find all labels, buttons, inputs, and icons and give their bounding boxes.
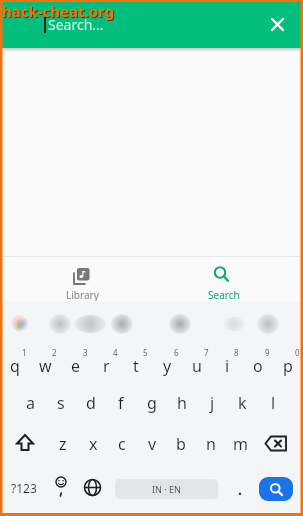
staticText: 2 [52,347,57,357]
button[interactable]: k [227,388,257,418]
staticText: t [133,355,139,377]
button[interactable]: n [197,429,225,459]
staticText: . [238,480,242,499]
button[interactable]: b [167,429,195,459]
staticText: d [86,392,96,414]
staticText: y [163,355,172,377]
staticText: x [89,433,98,455]
button[interactable] [270,17,286,33]
button[interactable] [259,477,293,501]
staticText: i [225,355,230,377]
staticText: ?123 [11,480,37,496]
button[interactable] [192,258,256,302]
staticText: h [177,392,187,414]
staticText: u [192,355,202,377]
staticText: m [233,433,248,455]
button[interactable] [54,476,70,500]
staticText: 1 [22,347,27,357]
button[interactable]: a [15,388,45,418]
button[interactable]: g [137,388,167,418]
button[interactable]: h [167,388,197,418]
button[interactable]: i [212,350,242,382]
staticText: hack-cheat.org [2,1,115,21]
button[interactable]: u [182,350,212,382]
staticText: l [271,392,276,414]
button[interactable]: c [108,429,136,459]
button[interactable]: r [91,350,121,382]
staticText: 4 [113,347,118,357]
staticText: g [147,392,157,414]
staticText: f [118,392,124,414]
staticText: Search... [48,15,104,34]
staticText: z [59,433,67,455]
staticText: j [210,392,215,414]
staticText: o [253,355,263,377]
button[interactable]: IN · EN [115,479,218,499]
button[interactable]: q [0,350,30,382]
button[interactable]: Search... [0,0,303,48]
staticText: 6 [174,347,179,357]
staticText: a [26,392,35,414]
button[interactable]: x [79,429,107,459]
staticText: 0 [295,347,300,357]
button[interactable]: m [226,429,254,459]
staticText: b [176,433,186,455]
staticText: 3 [83,347,88,357]
button[interactable]: e [61,350,91,382]
button[interactable]: z [49,429,77,459]
button[interactable]: d [76,388,106,418]
button[interactable]: f [106,388,136,418]
staticText: IN · EN [152,483,181,495]
staticText: s [57,392,65,414]
staticText: Library [66,288,99,301]
staticText: w [39,355,52,377]
button[interactable] [48,258,112,302]
button[interactable]: t [121,350,151,382]
staticText: p [283,355,293,377]
staticText: k [238,392,247,414]
staticText: c [118,433,126,455]
button[interactable]: y [152,350,182,382]
button[interactable] [264,435,290,453]
button[interactable] [14,433,36,453]
staticText: e [71,355,81,377]
staticText: 9 [265,347,270,357]
staticText: q [10,355,20,377]
staticText: 5 [143,347,148,357]
button[interactable]: j [197,388,227,418]
staticText: v [148,433,157,455]
staticText: 8 [234,347,239,357]
button[interactable]: s [46,388,76,418]
staticText: hack-cheat.org [3,2,116,22]
staticText: r [103,355,110,377]
staticText: Search [208,288,240,301]
button[interactable]: o [243,350,273,382]
button[interactable] [83,478,102,497]
button[interactable]: w [30,350,60,382]
button[interactable]: v [138,429,166,459]
button[interactable]: p [273,350,303,382]
staticText: 7 [204,347,209,357]
staticText: n [206,433,216,455]
button[interactable]: l [258,388,288,418]
